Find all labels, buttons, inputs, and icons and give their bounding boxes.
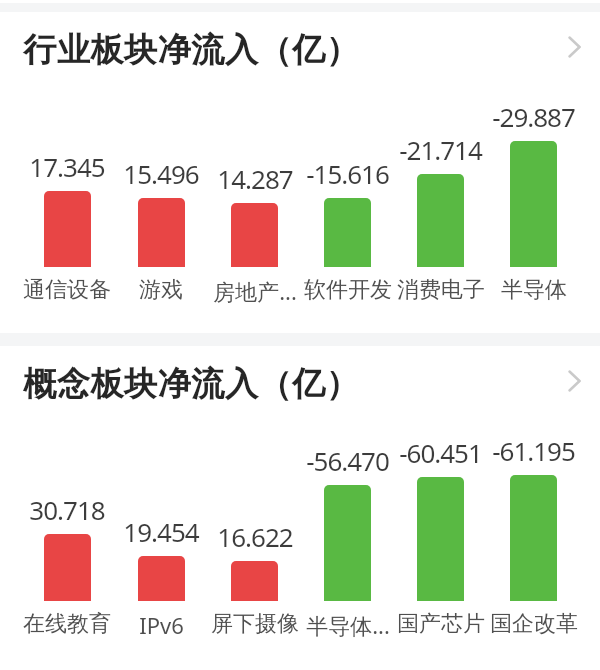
staticText: IPv6	[139, 610, 184, 640]
staticText: 通信设备	[23, 276, 111, 304]
staticText: 在线教育	[23, 610, 111, 638]
button[interactable]: -29.887	[487, 87, 580, 333]
staticText: 30.718	[29, 492, 105, 527]
staticText: 国企改革	[490, 610, 578, 638]
button[interactable]: 概念板块净流入（亿）	[0, 346, 600, 421]
button[interactable]: 14.287	[208, 87, 301, 333]
button[interactable]: 15.496	[114, 87, 208, 333]
staticText: 国产芯片	[397, 610, 485, 638]
button[interactable]: -56.470	[301, 421, 394, 667]
button[interactable]: -21.714	[394, 87, 487, 333]
staticText: 14.287	[217, 161, 293, 196]
staticText: 房地产...	[213, 276, 297, 306]
staticText: -21.714	[399, 132, 482, 167]
staticText: -29.887	[492, 99, 575, 134]
staticText: 半导体...	[306, 610, 390, 640]
staticText: 17.345	[29, 149, 105, 184]
other: Open 概念板块净流入（亿）	[568, 370, 581, 392]
button[interactable]: 30.718	[20, 421, 114, 667]
staticText: 16.622	[217, 519, 293, 554]
staticText: -61.195	[492, 433, 575, 468]
button[interactable]: -61.195	[487, 421, 580, 667]
staticText: 屏下摄像	[211, 610, 299, 638]
staticText: -15.616	[306, 156, 389, 191]
button[interactable]: 行业板块净流入（亿）	[0, 12, 600, 87]
button[interactable]: -15.616	[301, 87, 394, 333]
staticText: 19.454	[123, 514, 199, 549]
staticText: 软件开发	[304, 276, 392, 304]
button[interactable]: 17.345	[20, 87, 114, 333]
staticText: 行业板块净流入（亿）	[23, 29, 359, 71]
button[interactable]: -60.451	[394, 421, 487, 667]
staticText: 半导体	[501, 276, 567, 304]
other: Open 行业板块净流入（亿）	[568, 36, 581, 58]
button[interactable]: 16.622	[208, 421, 301, 667]
staticText: 15.496	[123, 156, 199, 191]
staticText: 概念板块净流入（亿）	[23, 363, 359, 405]
staticText: -60.451	[399, 435, 482, 470]
staticText: 消费电子	[397, 276, 485, 304]
button[interactable]: 19.454	[114, 421, 208, 667]
staticText: 游戏	[139, 276, 183, 304]
staticText: -56.470	[306, 443, 389, 478]
